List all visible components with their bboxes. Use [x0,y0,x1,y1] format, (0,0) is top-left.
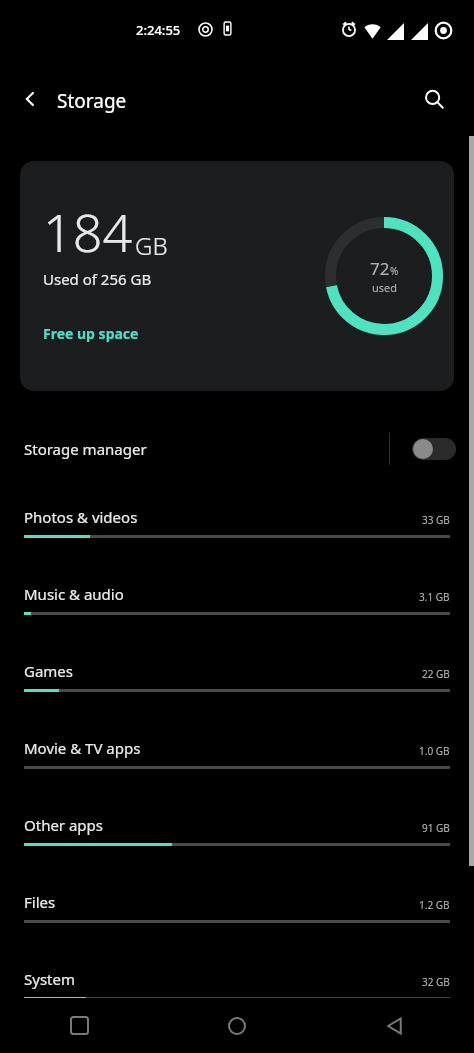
button[interactable]: Photos & videos [0,495,474,555]
staticText: 22 GB [422,667,450,681]
staticText: Movie & TV apps [24,738,141,758]
staticText: 184 [43,196,133,267]
staticText: 72 [370,257,390,280]
button[interactable]: Back [316,998,474,1053]
staticText: Games [24,661,74,681]
button[interactable]: Other apps [0,803,474,863]
staticText: Free up space [43,324,139,343]
button[interactable]: System [0,957,474,1017]
staticText: GB [135,229,168,262]
button[interactable]: Movie & TV apps [0,726,474,786]
button[interactable]: Music & audio [0,572,474,632]
staticText: Storage [57,88,127,114]
staticText: 1.2 GB [419,898,450,912]
staticText: 2:24:55 [136,21,181,39]
staticText: used [372,280,398,295]
button[interactable]: Back [14,83,46,115]
staticText: Photos & videos [24,507,138,527]
button[interactable]: Games [0,649,474,709]
staticText: 32 GB [422,975,450,989]
staticText: % [390,264,399,278]
staticText: Files [24,892,56,912]
staticText: 91 GB [422,821,450,835]
staticText: 1.0 GB [419,744,450,758]
staticText: Storage manager [24,439,147,459]
staticText: System [24,969,75,989]
staticText: Used of 256 GB [43,269,152,289]
staticText: 3.1 GB [419,590,450,604]
staticText: Other apps [24,815,104,835]
staticText: 33 GB [422,513,450,527]
button[interactable]: Home [158,998,316,1053]
button[interactable]: Search [418,83,450,115]
button[interactable]: Free up space [43,324,139,343]
button[interactable]: Files [0,880,474,940]
staticText: Music & audio [24,584,124,604]
button[interactable]: Recents [0,998,158,1053]
button[interactable]: Storage manager [0,420,474,478]
button[interactable]: 184 [20,161,454,391]
button[interactable]: Storage manager toggle [412,438,456,460]
